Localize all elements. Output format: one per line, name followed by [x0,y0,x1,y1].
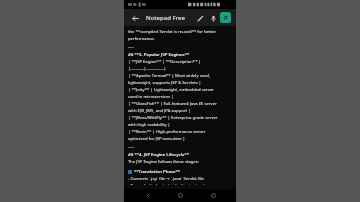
staticText: |----------|-------------| [128,66,166,72]
staticText: | **Resin** | High-performance server [128,129,206,135]
staticText: **Translation Phase** [134,169,181,175]
staticText: - Example: `index.jsp` → `index_jsp.java… [128,183,205,185]
staticText: ## **4. JSP Engine Lifecycle** [128,152,190,158]
button[interactable]: Voice input [207,12,219,24]
button[interactable]: Back [139,189,157,202]
staticText: with EJB, JMS, and JPA support | [128,108,191,114]
staticText: optimized for JSP execution | [128,136,186,142]
staticText: used in microservices | [128,94,174,100]
staticText: with high scalability | [128,122,171,128]
staticText: the **compiled Servlet is reused** for b… [128,29,217,35]
button[interactable]: Account [220,12,231,23]
staticText: | **JBoss/WildFly** | Enterprise-grade s… [128,115,218,121]
staticText: lightweight, supports JSP & Servlets | [128,80,202,86]
staticText: | **Jetty** | Lightweight, embedded serv… [128,87,215,93]
staticText: | **GlassFish** | Full-featured Java EE … [128,101,217,107]
staticText: The JSP Engine follows these stages: [128,159,199,165]
button[interactable]: Back [129,12,141,24]
staticText: - Converts `.jsp` file → `.java` Servlet… [128,176,204,182]
staticText: Notepad Free [146,14,185,22]
staticText: ## **3. Popular JSP Engines** [128,52,190,58]
button[interactable]: Edit [194,12,206,24]
staticText: P [224,14,228,22]
button[interactable]: Recent apps [204,189,222,202]
button[interactable]: Home [171,189,189,202]
staticText: performance. [128,36,155,42]
staticText: | **Apache Tomcat** | Most widely used, [128,73,211,79]
staticText: | **JSP Engine** | **Description** | [128,59,201,65]
